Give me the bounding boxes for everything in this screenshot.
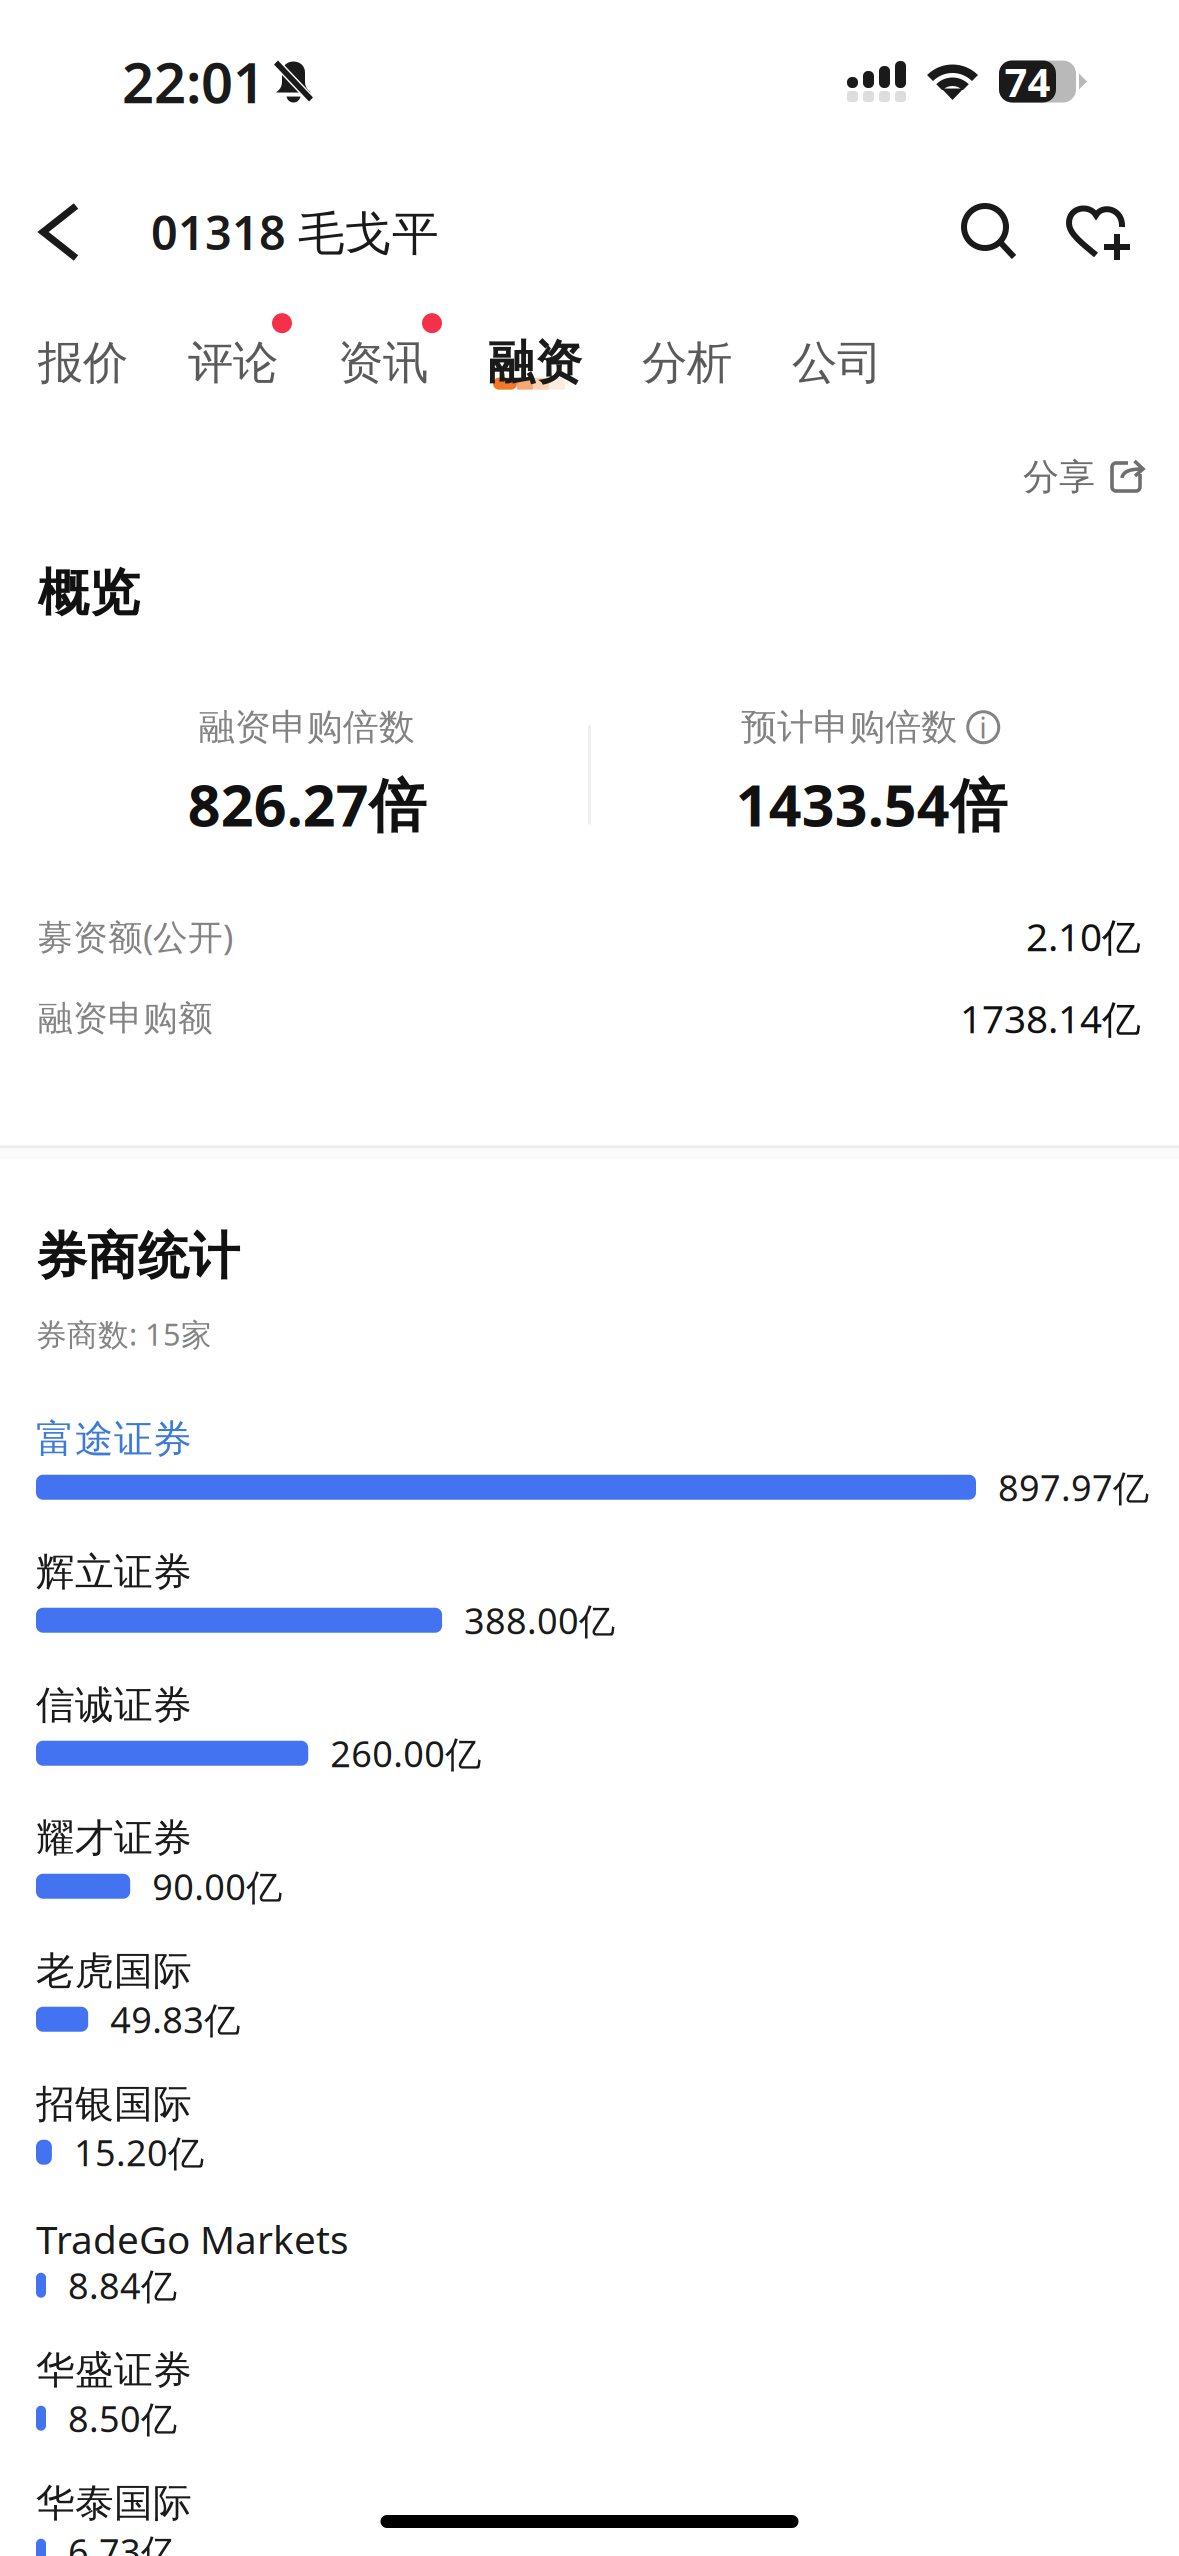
staticText: 华泰国际 — [36, 2479, 192, 2527]
staticText: i — [979, 708, 987, 747]
button[interactable]: Add to watchlist — [1052, 177, 1179, 287]
staticText: 融资申购额 — [38, 997, 213, 1040]
staticText: 15.20亿 — [74, 2128, 204, 2176]
staticText: 富途证券 — [36, 1415, 192, 1463]
button[interactable]: 华泰国际 — [36, 2479, 1179, 2556]
staticText: 券商数: 15家 — [36, 1314, 212, 1354]
staticText: 6.73亿 — [68, 2527, 177, 2556]
button[interactable]: Back — [0, 177, 92, 287]
staticText: 招银国际 — [36, 2080, 192, 2128]
staticText: 01318 毛戈平 — [151, 201, 439, 263]
staticText: 华盛证券 — [36, 2346, 192, 2394]
staticText: 融资 — [488, 334, 582, 392]
button[interactable]: 评论 — [182, 321, 284, 405]
button[interactable]: 华盛证券 — [36, 2346, 1179, 2479]
button[interactable]: 耀才证券 — [36, 1814, 1179, 1947]
staticText: 388.00亿 — [464, 1596, 615, 1644]
staticText: 1433.54倍 — [736, 766, 1007, 842]
staticText: 公司 — [792, 335, 882, 391]
staticText: TradeGo Markets — [36, 2213, 349, 2265]
staticText: 826.27倍 — [188, 766, 426, 842]
staticText: 分享 — [1023, 455, 1095, 499]
staticText: 74 — [1004, 55, 1050, 108]
button[interactable]: Search — [952, 177, 1052, 287]
staticText: 耀才证券 — [36, 1814, 192, 1862]
staticText: 22:01 — [122, 44, 265, 119]
staticText: 49.83亿 — [110, 1995, 240, 2043]
staticText: 1738.14亿 — [960, 993, 1141, 1044]
staticText: 预计申购倍数 — [741, 705, 957, 749]
button[interactable]: 公司 — [786, 321, 888, 405]
staticText: 辉立证券 — [36, 1548, 192, 1596]
staticText: 资讯 — [338, 335, 428, 391]
staticText: 券商统计 — [36, 1225, 240, 1288]
staticText: 概览 — [38, 562, 140, 624]
staticText: 募资额(公开) — [38, 913, 233, 959]
button[interactable]: 融资 — [482, 321, 588, 405]
button[interactable]: 资讯 — [332, 321, 434, 405]
button[interactable]: 辉立证券 — [36, 1548, 1179, 1681]
staticText: 897.97亿 — [998, 1463, 1149, 1511]
button[interactable]: 关于预计申购倍数 — [965, 709, 1001, 745]
button[interactable]: 老虎国际 — [36, 1947, 1179, 2080]
staticText: 8.50亿 — [68, 2394, 177, 2442]
staticText: 2.10亿 — [1026, 911, 1141, 962]
button[interactable]: 富途证券 — [36, 1415, 1179, 1548]
button[interactable]: TradeGo Markets — [36, 2213, 1179, 2346]
staticText: 信诚证券 — [36, 1681, 192, 1729]
staticText: 90.00亿 — [152, 1862, 282, 1910]
staticText: 融资申购倍数 — [199, 705, 415, 749]
staticText: 老虎国际 — [36, 1947, 192, 1995]
staticText: 评论 — [188, 335, 278, 391]
staticText: 260.00亿 — [330, 1729, 481, 1777]
staticText: 报价 — [38, 335, 128, 391]
staticText: 8.84亿 — [68, 2261, 177, 2309]
button[interactable]: 招银国际 — [36, 2080, 1179, 2213]
button[interactable]: 分析 — [636, 321, 738, 405]
staticText: 分析 — [642, 335, 732, 391]
button[interactable]: 信诚证券 — [36, 1681, 1179, 1814]
button[interactable]: 分享 — [1011, 442, 1157, 512]
button[interactable]: 报价 — [32, 321, 134, 405]
